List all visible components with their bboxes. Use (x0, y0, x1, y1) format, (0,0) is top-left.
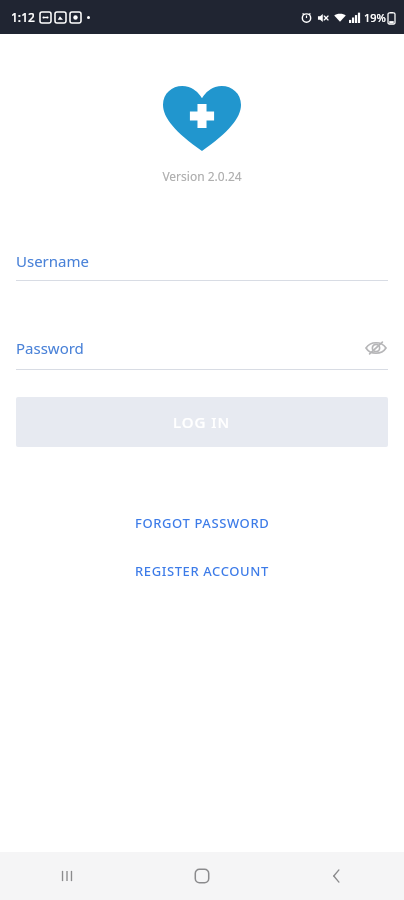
button[interactable]: Show password (364, 336, 388, 360)
button[interactable]: Recent apps (0, 852, 134, 900)
staticText: LOG IN (173, 412, 231, 432)
button[interactable]: FORGOT PASSWORD (0, 512, 404, 534)
button[interactable]: Password (16, 336, 388, 370)
staticText: REGISTER ACCOUNT (135, 562, 269, 580)
staticText: 19% (364, 10, 386, 25)
button[interactable]: REGISTER ACCOUNT (0, 560, 404, 582)
staticText: Password (16, 338, 364, 358)
button[interactable]: Username (16, 251, 388, 281)
staticText: 1:12 (11, 9, 35, 25)
staticText: Version 2.0.24 (0, 168, 404, 184)
staticText: Username (16, 251, 388, 271)
button[interactable]: Back (269, 852, 404, 900)
staticText: FORGOT PASSWORD (135, 514, 270, 532)
button[interactable]: Home (134, 852, 269, 900)
